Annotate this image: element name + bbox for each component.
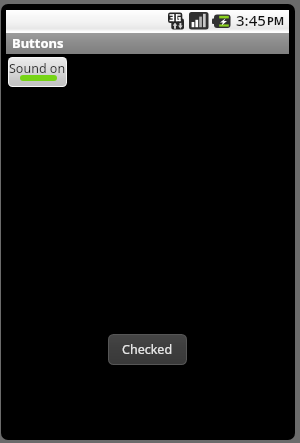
- staticText: Buttons: [12, 34, 64, 52]
- staticText: Sound on: [9, 60, 66, 77]
- staticText: Checked: [122, 341, 173, 358]
- staticText: 3:45: [236, 10, 266, 30]
- button[interactable]: Sound on: [8, 57, 67, 87]
- button[interactable]: Checked: [108, 334, 187, 365]
- staticText: PM: [267, 13, 285, 28]
